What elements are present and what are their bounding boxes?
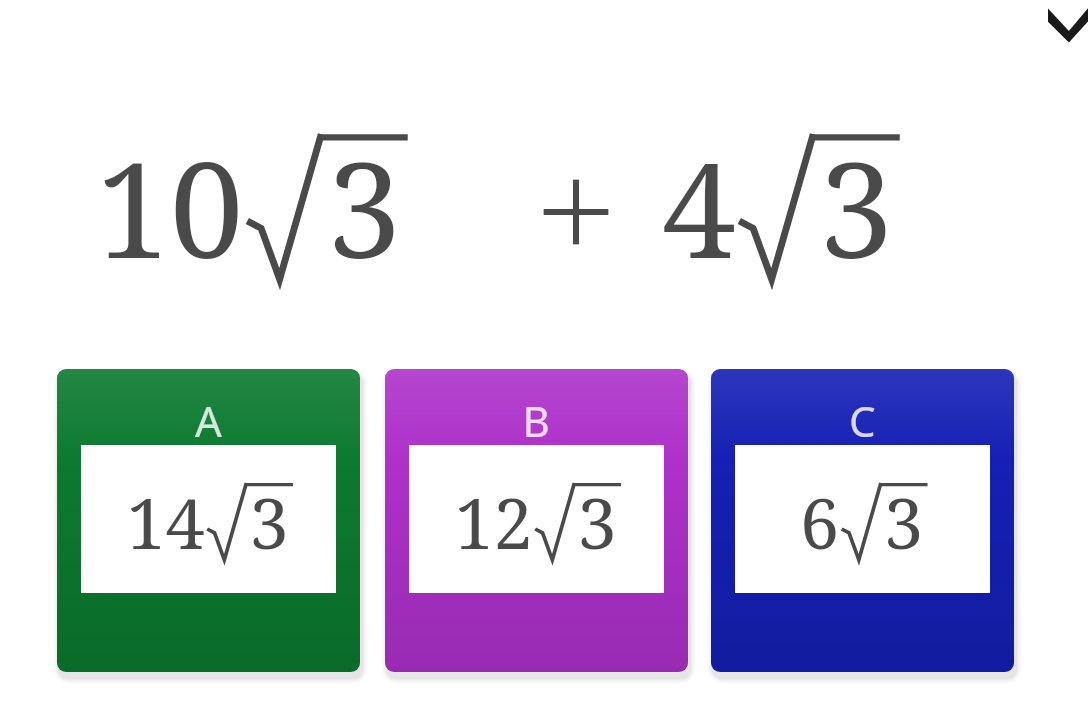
button[interactable]: Answer B: 12 root 3 (385, 369, 688, 672)
button[interactable]: Next question (1046, 0, 1088, 44)
button[interactable]: Answer A: 14 root 3 (57, 369, 360, 672)
button[interactable]: Answer C: 6 root 3 (711, 369, 1014, 672)
